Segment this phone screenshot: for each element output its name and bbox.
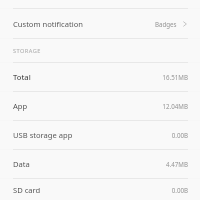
staticText: 0.00B <box>171 186 188 194</box>
button[interactable]: Total <box>0 63 200 91</box>
staticText: SD card <box>13 185 41 195</box>
button[interactable]: USB storage app <box>0 121 200 149</box>
staticText: Badges <box>155 20 177 28</box>
staticText: 12.04MB <box>162 102 188 110</box>
staticText: STORAGE <box>13 47 41 55</box>
staticText: Custom notification <box>13 19 83 29</box>
staticText: Total <box>13 72 31 82</box>
button[interactable]: SD card <box>0 179 200 200</box>
button[interactable]: App <box>0 92 200 120</box>
staticText: 0.00B <box>171 131 188 139</box>
button[interactable]: Data <box>0 150 200 178</box>
staticText: App <box>13 101 28 111</box>
button[interactable]: Custom notification, Badges <box>0 9 200 38</box>
staticText: Data <box>13 159 30 169</box>
staticText: USB storage app <box>13 130 73 140</box>
staticText: 4.47MB <box>166 160 188 168</box>
staticText: 16.51MB <box>162 73 188 81</box>
